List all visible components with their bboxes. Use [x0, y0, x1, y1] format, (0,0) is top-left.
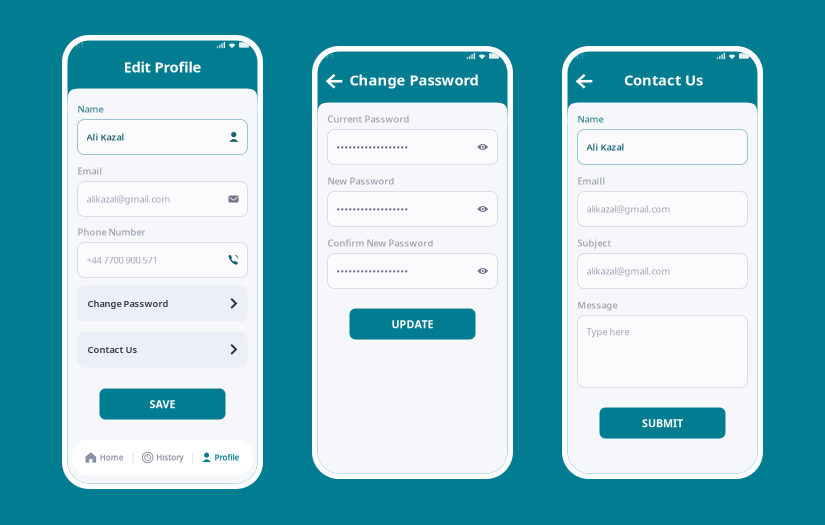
staticText: ••••••••••••••••••	[336, 265, 408, 277]
staticText: SUBMIT	[642, 416, 683, 430]
button[interactable]: Back	[575, 72, 592, 87]
staticText: ••••••••••••••••••	[336, 203, 408, 215]
staticText: SAVE	[149, 397, 175, 411]
staticText: Change Password	[349, 70, 478, 89]
button[interactable]: UPDATE	[349, 308, 475, 339]
staticText: Message	[577, 299, 617, 311]
staticText: Ali Kazal	[86, 131, 124, 143]
staticText: Subject	[577, 237, 611, 249]
staticText: History	[156, 452, 183, 463]
button[interactable]: Change Password	[77, 285, 247, 321]
staticText: Name	[77, 103, 103, 115]
staticText: ••••••••••••••••••	[336, 141, 408, 153]
staticText: Edit Profile	[123, 57, 201, 76]
button[interactable]: Back	[325, 72, 342, 87]
staticText: Emaill	[577, 175, 605, 187]
staticText: Type here	[586, 325, 629, 338]
staticText: Email	[77, 165, 102, 177]
staticText: Contact Us	[87, 343, 137, 356]
staticText: Contact Us	[624, 70, 703, 89]
staticText: alikazal@gmail.com	[586, 265, 670, 277]
staticText: Change Password	[87, 297, 168, 310]
staticText: Home	[100, 452, 124, 463]
staticText: alikazal@gmail.com	[586, 203, 670, 215]
button[interactable]: History	[142, 452, 183, 463]
staticText: Ali Kazal	[586, 141, 624, 153]
staticText: +44 7700 900 571	[86, 254, 157, 266]
staticText: 4:1	[574, 52, 584, 60]
button[interactable]: Contact Us	[77, 331, 247, 367]
staticText: Profile	[215, 452, 240, 463]
button[interactable]: SAVE	[99, 388, 225, 419]
staticText: Current Password	[327, 113, 409, 125]
button[interactable]: Profile	[202, 452, 240, 463]
staticText: UPDATE	[391, 317, 433, 331]
staticText: 4:1	[324, 52, 334, 60]
button[interactable]: Home	[85, 452, 124, 463]
staticText: New Password	[327, 175, 394, 187]
button[interactable]: SUBMIT	[599, 407, 725, 438]
staticText: alikazal@gmail.com	[86, 193, 170, 205]
staticText: 4:1	[74, 41, 84, 49]
staticText: Confirm New Password	[327, 237, 433, 249]
staticText: Name	[577, 113, 603, 125]
staticText: Phone Number	[77, 226, 145, 238]
